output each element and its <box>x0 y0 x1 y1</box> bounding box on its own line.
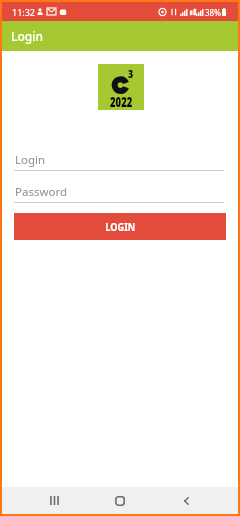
button[interactable]: Recent apps <box>38 490 70 511</box>
staticText: 11:32 <box>12 6 36 18</box>
staticText: 3 <box>128 67 134 81</box>
button[interactable]: LOGIN <box>14 213 226 240</box>
staticText: Login <box>15 152 46 168</box>
staticText: 2022 <box>110 93 133 111</box>
button[interactable]: Login <box>14 152 224 171</box>
staticText: Password <box>15 184 68 200</box>
button[interactable]: Password <box>14 184 224 203</box>
staticText: Login <box>11 28 43 44</box>
button[interactable]: Home <box>104 490 136 511</box>
staticText: 38% <box>205 6 221 19</box>
staticText: LOGIN <box>105 220 136 234</box>
button[interactable]: Back <box>170 490 202 511</box>
